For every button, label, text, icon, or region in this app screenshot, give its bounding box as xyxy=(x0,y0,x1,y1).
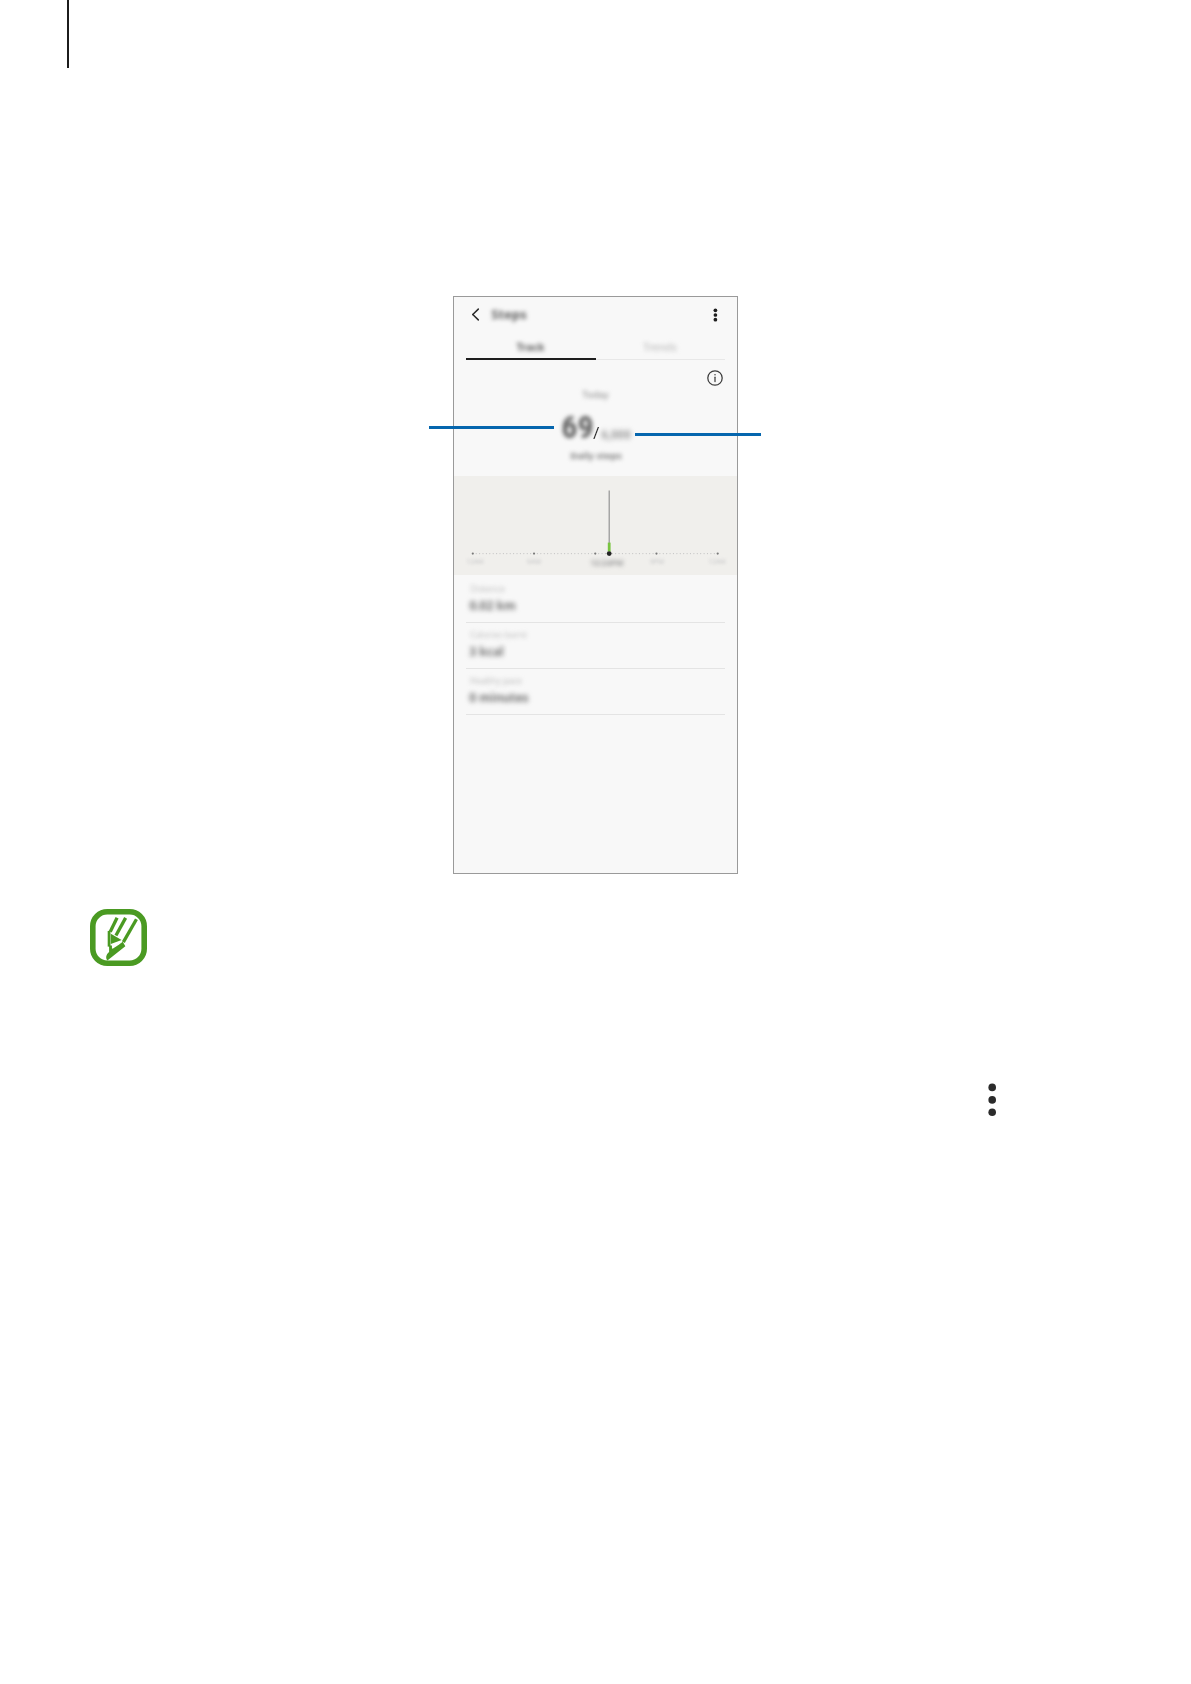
staticText: / xyxy=(593,421,600,444)
staticText: 0.02 km xyxy=(469,597,516,613)
staticText: 12AM xyxy=(466,557,484,566)
staticText: Healthy pace xyxy=(470,675,522,687)
staticText: 0 minutes xyxy=(469,689,529,705)
staticText: 12:24PM xyxy=(590,557,624,568)
button[interactable]: Calories burnt xyxy=(453,623,738,669)
button[interactable]: Trends xyxy=(595,334,725,359)
staticText: Calories burnt xyxy=(470,629,527,641)
button[interactable]: Information xyxy=(702,365,727,390)
staticText: Today xyxy=(582,388,609,401)
staticText: 3 kcal xyxy=(469,643,504,659)
staticText: 69 xyxy=(561,408,594,446)
staticText: 6AM xyxy=(527,557,541,566)
button[interactable]: Navigate up xyxy=(463,302,488,327)
staticText: 6,000 xyxy=(601,427,631,442)
button[interactable]: Track xyxy=(466,334,595,359)
other: Note xyxy=(90,909,147,966)
staticText: Steps xyxy=(491,305,527,323)
button[interactable]: More options xyxy=(701,302,726,327)
staticText: Track xyxy=(516,340,545,354)
button[interactable]: More options xyxy=(978,1074,1006,1120)
button[interactable]: Distance xyxy=(453,577,738,623)
button[interactable]: Healthy pace xyxy=(453,669,738,715)
staticText: Trends xyxy=(643,340,677,354)
staticText: 6PM xyxy=(650,557,664,566)
staticText: Daily steps xyxy=(570,449,622,462)
staticText: 12AM xyxy=(708,557,726,566)
staticText: Distance xyxy=(470,583,505,595)
